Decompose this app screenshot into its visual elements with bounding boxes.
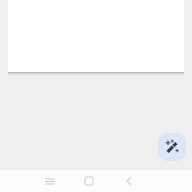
button[interactable]: Auto fix	[158, 133, 186, 161]
button[interactable]: Recent apps	[40, 172, 58, 190]
button[interactable]: Home	[80, 172, 98, 190]
button[interactable]: Back	[120, 172, 138, 190]
